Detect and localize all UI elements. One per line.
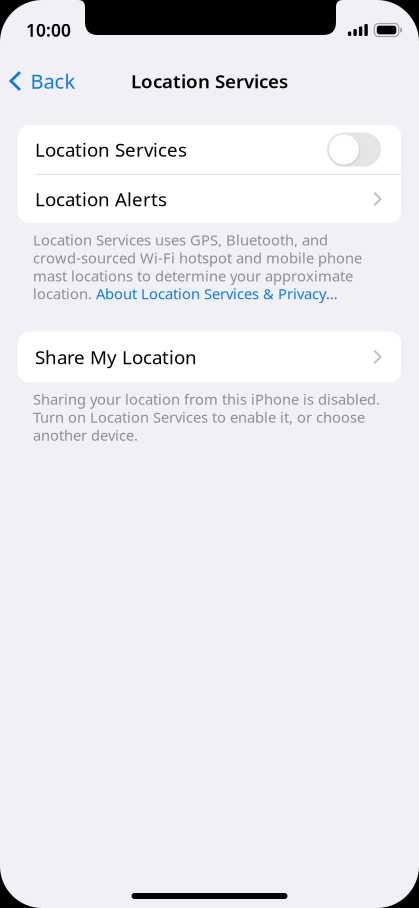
button[interactable]: Share My Location [18, 331, 401, 382]
button[interactable]: About Location Services & Privacy… [96, 284, 338, 303]
staticText: mast locations to determine your approxi… [33, 266, 353, 285]
staticText: Sharing your location from this iPhone i… [33, 389, 380, 409]
staticText: Share My Location [35, 344, 197, 369]
button[interactable]: Back [0, 59, 83, 103]
staticText: Location Services [131, 69, 288, 93]
staticText: Turn on Location Services to enable it, … [33, 407, 365, 427]
button[interactable]: Location Alerts [18, 175, 401, 223]
staticText: crowd-sourced Wi-Fi hotspot and mobile p… [33, 248, 362, 267]
staticText: Back [30, 68, 75, 94]
staticText: About Location Services & Privacy… [96, 284, 338, 303]
staticText: 10:00 [26, 18, 71, 41]
staticText: Location Services [35, 137, 187, 162]
staticText: Location Alerts [35, 187, 167, 211]
staticText: another device. [33, 425, 138, 445]
button[interactable]: Location Services [327, 132, 381, 166]
staticText: location. [33, 284, 96, 303]
staticText: Location Services uses GPS, Bluetooth, a… [33, 230, 328, 249]
